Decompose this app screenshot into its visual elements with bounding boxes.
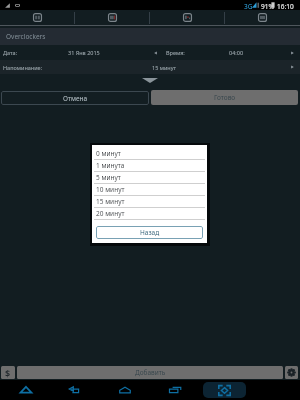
staticText: 15 минут [152,64,177,71]
button[interactable]: Overclockers [0,28,300,45]
staticText: 04:00 [229,49,244,56]
staticText: 31 Янв 2015 [68,49,100,56]
button[interactable]: 15 минут [92,196,207,207]
button[interactable]: Settings [285,366,298,379]
button[interactable]: Fullscreen [203,382,246,398]
staticText: Назад [140,228,160,237]
staticText: $ [5,367,11,379]
button[interactable]: Tab 4 [225,10,300,25]
staticText: Время: [166,49,185,56]
staticText: 16:10 [277,2,294,11]
button[interactable]: Готово [151,90,298,105]
staticText: 15 минут [96,197,125,206]
button[interactable]: Back [61,382,89,398]
staticText: Дата: [3,49,18,56]
staticText: Готово [214,93,236,102]
staticText: 1 минута [96,161,125,170]
button[interactable]: Tab 2 [75,10,150,25]
button[interactable]: Up [12,382,40,398]
button[interactable]: Назад [96,226,203,239]
button[interactable]: Tab 1 [0,10,75,25]
staticText: 10 минут [96,185,125,194]
button[interactable]: 5 минут [92,172,207,183]
button[interactable]: Home [111,382,139,398]
staticText: Overclockers [6,32,46,41]
button[interactable]: Currency [1,366,15,379]
staticText: 5 минут [96,173,121,182]
button[interactable]: 0 минут [92,148,207,159]
staticText: Отмена [63,94,88,103]
staticText: 3G [244,2,253,11]
button[interactable]: Отмена [1,91,149,105]
button[interactable]: 10 минут [92,184,207,195]
staticText: 0 минут [96,149,121,158]
button[interactable]: Tab 3 [150,10,225,25]
button[interactable]: Recents [161,382,189,398]
staticText: Напоминание: [3,64,43,71]
staticText: 20 минут [96,209,125,218]
button[interactable]: 1 минута [92,160,207,171]
button[interactable]: Добавить [17,366,283,379]
staticText: 91% [261,2,274,11]
button[interactable]: 20 минут [92,208,207,219]
staticText: Добавить [135,368,166,377]
